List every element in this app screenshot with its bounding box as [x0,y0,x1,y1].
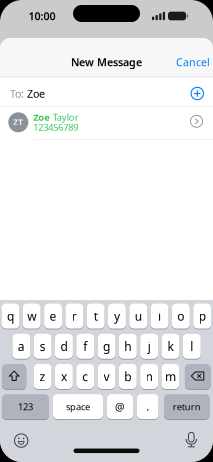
staticText: j [148,338,151,354]
staticText: f [83,338,87,354]
staticText: 123 [18,400,33,413]
staticText: c [82,368,88,384]
staticText: Cancel [176,55,210,69]
button[interactable]: p [193,303,211,329]
staticText: a [18,338,25,354]
staticText: r [72,308,77,324]
button[interactable]: i [151,303,168,329]
button[interactable]: space [53,394,103,420]
staticText: g [103,338,110,354]
button[interactable]: z [34,363,52,389]
staticText: h [124,338,131,354]
staticText: o [177,308,184,324]
staticText: n [146,368,153,384]
staticText: i [158,308,161,324]
button[interactable]: t [87,303,105,329]
staticText: return [173,400,201,413]
staticText: . [146,400,149,414]
button[interactable]: h [119,333,137,359]
button[interactable]: Dictation [183,432,199,448]
staticText: space [66,400,90,413]
staticText: Taylor [53,111,79,123]
staticText: x [61,368,67,384]
button[interactable]: @ [107,394,133,420]
staticText: e [49,308,56,324]
staticText: New Message [71,55,142,69]
button[interactable]: Shift [2,363,26,389]
button[interactable]: k [161,333,179,359]
staticText: t [94,308,98,324]
button[interactable]: m [161,363,179,389]
button[interactable]: 123 [2,394,49,420]
button[interactable]: j [140,333,158,359]
staticText: Zoe [33,111,50,123]
staticText: s [40,338,46,354]
button[interactable]: l [183,333,201,359]
staticText: y [114,308,120,324]
button[interactable]: Cancel [176,55,210,69]
staticText: q [7,308,14,324]
button[interactable]: e [44,303,62,329]
button[interactable]: g [98,333,115,359]
staticText: v [103,368,109,384]
button[interactable]: ZT [0,106,213,139]
staticText: w [27,308,36,324]
button[interactable]: o [172,303,190,329]
staticText: Zoe [27,86,45,101]
staticText: 10:00 [28,9,55,23]
staticText: m [165,368,176,384]
staticText: @ [115,400,125,414]
staticText: ZT [13,117,23,128]
button[interactable]: c [76,363,94,389]
button[interactable]: b [119,363,137,389]
button[interactable]: v [97,363,115,389]
button[interactable]: d [55,333,73,359]
button[interactable]: y [108,303,126,329]
button[interactable]: r [65,303,83,329]
button[interactable]: q [1,303,19,329]
staticText: z [40,368,46,384]
staticText: k [167,338,173,354]
staticText: To: [10,86,24,101]
button[interactable]: s [34,333,52,359]
staticText: b [124,368,131,384]
button[interactable]: return [164,394,209,420]
button[interactable]: u [129,303,147,329]
button[interactable]: x [55,363,73,389]
button[interactable]: . [137,394,158,420]
button[interactable]: Add Contact [190,86,204,100]
staticText: 123456789 [33,121,78,133]
button[interactable]: a [12,333,30,359]
staticText: l [190,338,193,354]
button[interactable]: w [23,303,41,329]
button[interactable]: Emoji [14,433,29,448]
staticText: d [60,338,67,354]
button[interactable]: Delete [185,363,211,389]
staticText: p [199,308,206,324]
button[interactable]: f [76,333,94,359]
staticText: u [135,308,142,324]
button[interactable]: n [140,363,158,389]
